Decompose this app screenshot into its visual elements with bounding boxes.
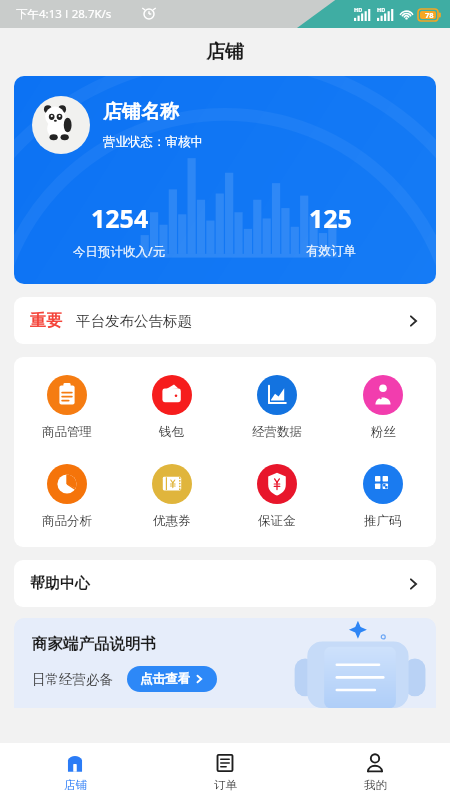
- staticText: 商品管理: [42, 424, 92, 440]
- staticText: 有效订单: [306, 243, 356, 259]
- other: 店铺: [64, 752, 86, 774]
- staticText: 店铺: [206, 40, 244, 64]
- staticText: 粉丝: [371, 424, 396, 440]
- staticText: 点击查看: [140, 671, 190, 687]
- staticText: 商家端产品说明书: [32, 634, 156, 654]
- staticText: 钱包: [159, 424, 184, 440]
- button[interactable]: 店铺名称: [14, 76, 436, 284]
- button[interactable]: 订单: [150, 743, 300, 800]
- staticText: 今日预计收入/元: [73, 243, 166, 260]
- staticText: 帮助中心: [30, 574, 90, 593]
- staticText: 经营数据: [252, 424, 302, 440]
- staticText: 店铺: [64, 778, 87, 792]
- button[interactable]: 经营数据: [224, 373, 330, 442]
- button[interactable]: 店铺: [0, 743, 150, 800]
- staticText: 重要: [30, 311, 62, 331]
- staticText: 店铺名称: [103, 100, 179, 124]
- staticText: 优惠券: [153, 513, 191, 529]
- staticText: 下午4:13 ǀ 28.7K/s: [16, 6, 112, 22]
- staticText: HD: [377, 6, 386, 13]
- staticText: 日常经营必备: [32, 671, 113, 688]
- staticText: 营业状态：审核中: [103, 134, 203, 150]
- staticText: 1254: [91, 201, 149, 235]
- button[interactable]: 粉丝: [330, 373, 436, 442]
- staticText: 125: [309, 201, 352, 235]
- button[interactable]: 重要: [14, 297, 436, 344]
- staticText: 平台发布公告标题: [76, 312, 192, 330]
- button[interactable]: 帮助中心: [14, 560, 436, 607]
- button[interactable]: 商家端产品说明书: [14, 618, 436, 708]
- button[interactable]: 商品分析: [14, 462, 119, 531]
- staticText: 78: [425, 10, 434, 20]
- staticText: 商品分析: [42, 513, 92, 529]
- button[interactable]: 钱包: [119, 373, 224, 442]
- staticText: 订单: [214, 778, 237, 792]
- staticText: 我的: [364, 778, 387, 792]
- button[interactable]: 优惠券: [119, 462, 224, 531]
- staticText: HD: [354, 6, 363, 13]
- staticText: 保证金: [258, 513, 296, 529]
- other: 订单: [214, 752, 236, 774]
- button[interactable]: 商品管理: [14, 373, 119, 442]
- other: 我的: [364, 752, 386, 774]
- button[interactable]: 保证金: [224, 462, 330, 531]
- button[interactable]: 推广码: [330, 462, 436, 531]
- staticText: 推广码: [364, 513, 402, 529]
- button[interactable]: 点击查看: [127, 666, 217, 692]
- button[interactable]: 我的: [300, 743, 450, 800]
